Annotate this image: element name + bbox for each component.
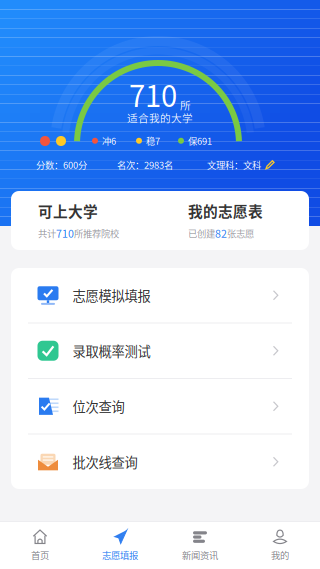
button[interactable]: 我的 bbox=[240, 522, 320, 569]
staticText: 录取概率测试 bbox=[72, 341, 150, 360]
staticText: 张志愿 bbox=[227, 226, 254, 240]
staticText: 710 bbox=[56, 225, 74, 241]
staticText: 位次查询 bbox=[72, 397, 124, 416]
button[interactable]: 批次线查询 bbox=[11, 434, 309, 489]
staticText: 我的 bbox=[271, 548, 289, 562]
button[interactable]: 位次查询 bbox=[11, 379, 309, 433]
staticText: 冲6 bbox=[102, 134, 116, 147]
staticText: 批次线查询 bbox=[72, 452, 137, 471]
button[interactable]: 我的志愿表 bbox=[160, 191, 309, 250]
staticText: 710 bbox=[129, 73, 177, 115]
staticText: 分数：600分 bbox=[36, 158, 87, 171]
staticText: 新闻资讯 bbox=[182, 548, 218, 562]
button[interactable]: 首页 bbox=[0, 522, 80, 569]
staticText: 稳7 bbox=[146, 134, 160, 147]
button[interactable]: 志愿填报 bbox=[80, 522, 160, 569]
staticText: 文理科：文科 bbox=[207, 158, 261, 171]
staticText: 适合我的大学 bbox=[127, 110, 193, 125]
staticText: 保691 bbox=[188, 134, 212, 147]
staticText: 名次：2983名 bbox=[117, 158, 173, 171]
staticText: 可上大学 bbox=[38, 200, 98, 221]
button[interactable]: 录取概率测试 bbox=[11, 323, 309, 378]
staticText: 首页 bbox=[31, 548, 49, 562]
staticText: 所推荐院校 bbox=[74, 226, 119, 240]
button[interactable]: 志愿模拟填报 bbox=[11, 268, 309, 322]
staticText: 共计 bbox=[38, 226, 56, 240]
staticText: 我的志愿表 bbox=[188, 200, 263, 221]
staticText: 82 bbox=[215, 225, 227, 241]
button[interactable]: 可上大学 bbox=[11, 191, 160, 250]
staticText: 所 bbox=[180, 97, 191, 112]
staticText: 已创建 bbox=[188, 226, 215, 240]
staticText: 志愿填报 bbox=[102, 548, 138, 562]
staticText: 志愿模拟填报 bbox=[72, 286, 150, 305]
button[interactable]: 新闻资讯 bbox=[160, 522, 240, 569]
